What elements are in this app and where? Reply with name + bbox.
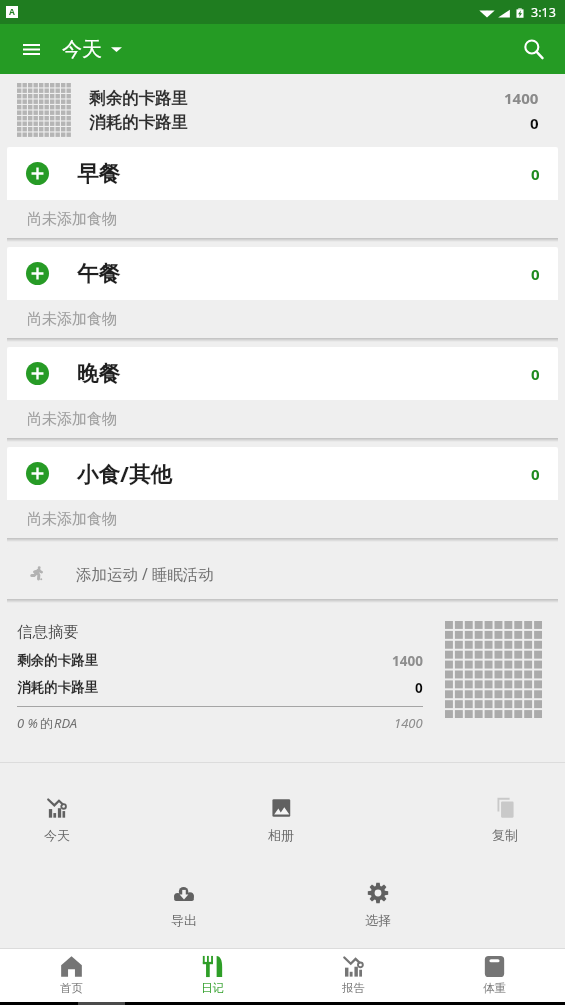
button[interactable]: 今天 — [7, 797, 107, 843]
button[interactable]: 导出 — [134, 882, 234, 928]
staticText: 消耗的卡路里 — [17, 679, 98, 696]
button[interactable]: 尚未添加食物 — [7, 400, 558, 438]
staticText: 导出 — [171, 912, 197, 928]
staticText: 0 — [531, 464, 540, 484]
staticText: 3:13 — [531, 4, 556, 21]
button[interactable]: 复制 — [455, 797, 555, 843]
button[interactable]: 日记 — [142, 949, 283, 995]
button[interactable]: 午餐 — [7, 247, 558, 300]
staticText: A — [9, 6, 15, 18]
staticText: 尚未添加食物 — [27, 510, 117, 529]
staticText: 尚未添加食物 — [27, 210, 117, 229]
staticText: 0 — [415, 679, 423, 697]
staticText: 日记 — [201, 981, 224, 995]
staticText: 尚未添加食物 — [27, 310, 117, 329]
staticText: 消耗的卡路里 — [89, 112, 188, 133]
button[interactable]: 报告 — [283, 949, 424, 995]
staticText: 1400 — [394, 714, 423, 732]
staticText: 0 — [531, 264, 540, 284]
button[interactable]: 尚未添加食物 — [7, 300, 558, 338]
staticText: 信息摘要 — [17, 622, 79, 642]
staticText: 相册 — [268, 827, 294, 843]
button[interactable]: 早餐 — [7, 147, 558, 200]
staticText: 添加运动 / 睡眠活动 — [76, 563, 214, 584]
staticText: 早餐 — [77, 160, 120, 187]
button[interactable]: 小食/其他 — [7, 447, 558, 500]
staticText: 剩余的卡路里 — [89, 88, 188, 109]
staticText: 小食/其他 — [77, 459, 172, 488]
button[interactable]: 体重 — [424, 949, 565, 995]
staticText: 的 — [40, 715, 53, 731]
staticText: 1400 — [392, 652, 423, 670]
staticText: 今天 — [62, 37, 102, 62]
button[interactable]: 首页 — [0, 949, 142, 995]
staticText: 体重 — [483, 981, 506, 995]
button[interactable]: 尚未添加食物 — [7, 200, 558, 238]
staticText: 1400 — [504, 88, 539, 108]
button[interactable]: 添加运动 / 睡眠活动 — [7, 547, 558, 599]
staticText: 首页 — [60, 981, 83, 995]
staticText: 今天 — [44, 827, 70, 843]
button[interactable]: 今天 — [62, 24, 122, 74]
staticText: 复制 — [492, 827, 518, 843]
button[interactable]: Menu — [8, 26, 55, 73]
staticText: 选择 — [365, 912, 391, 928]
staticText: 晚餐 — [77, 360, 120, 387]
staticText: 0 — [531, 364, 540, 384]
staticText: 尚未添加食物 — [27, 410, 117, 429]
button[interactable]: Search — [510, 26, 557, 73]
staticText: 0 — [531, 164, 540, 184]
button[interactable]: 晚餐 — [7, 347, 558, 400]
staticText: 午餐 — [77, 260, 120, 287]
staticText: 报告 — [342, 981, 365, 995]
staticText: RDA — [54, 714, 78, 732]
button[interactable]: 尚未添加食物 — [7, 500, 558, 538]
button[interactable]: 相册 — [231, 797, 331, 843]
staticText: 0 — [530, 113, 539, 133]
staticText: 剩余的卡路里 — [17, 652, 98, 669]
staticText: 0 % — [17, 714, 38, 732]
button[interactable]: 选择 — [328, 882, 428, 928]
